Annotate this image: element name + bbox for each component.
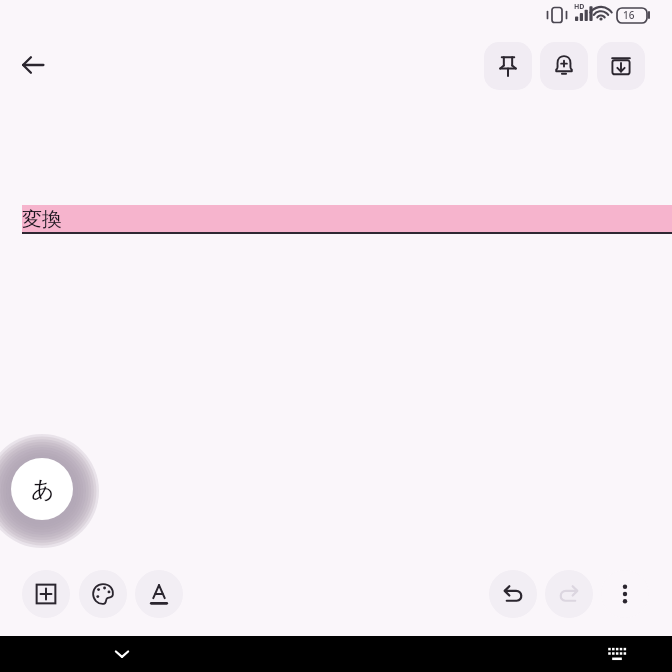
button[interactable]: Insert (22, 570, 70, 618)
staticText: あ (31, 475, 55, 504)
button[interactable]: Hide keyboard (108, 640, 136, 668)
staticText: 16 (623, 8, 635, 22)
button[interactable]: Add reminder (540, 42, 588, 90)
button[interactable]: Undo (489, 570, 537, 618)
staticText: 変換 (22, 207, 62, 232)
button[interactable]: Back (10, 42, 56, 88)
button[interactable]: Color palette (79, 570, 127, 618)
staticText: HD (574, 2, 585, 12)
button[interactable]: Archive (597, 42, 645, 90)
button[interactable]: Switch keyboard (603, 640, 631, 668)
button[interactable]: Redo (545, 570, 593, 618)
button[interactable]: Text format (135, 570, 183, 618)
button[interactable]: Pin (484, 42, 532, 90)
button[interactable]: More options (601, 570, 649, 618)
